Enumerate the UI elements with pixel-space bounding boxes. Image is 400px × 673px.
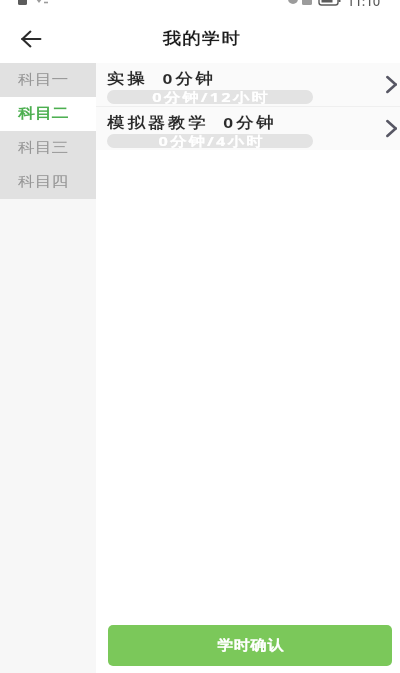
staticText: 0分钟/4小时: [158, 132, 265, 150]
staticText: 模拟器教学 0分钟: [107, 112, 277, 132]
button[interactable]: 实操 0分钟: [96, 63, 400, 106]
staticText: 科目四: [18, 173, 68, 191]
staticText: 我的学时: [162, 29, 240, 49]
staticText: 科目三: [18, 139, 68, 157]
staticText: 实操 0分钟: [107, 68, 216, 88]
button[interactable]: 科目一: [0, 63, 96, 97]
staticText: 11:10: [347, 0, 381, 6]
staticText: 学时确认: [217, 637, 283, 655]
staticText: 科目一: [18, 71, 68, 89]
staticText: 0分钟/12小时: [152, 88, 271, 106]
button[interactable]: 科目二: [0, 97, 96, 131]
staticText: 科目二: [18, 105, 68, 123]
button[interactable]: Back: [11, 19, 51, 59]
button[interactable]: 模拟器教学 0分钟: [96, 107, 400, 150]
button[interactable]: 学时确认: [108, 625, 392, 666]
button[interactable]: 科目四: [0, 165, 96, 199]
button[interactable]: 科目三: [0, 131, 96, 165]
